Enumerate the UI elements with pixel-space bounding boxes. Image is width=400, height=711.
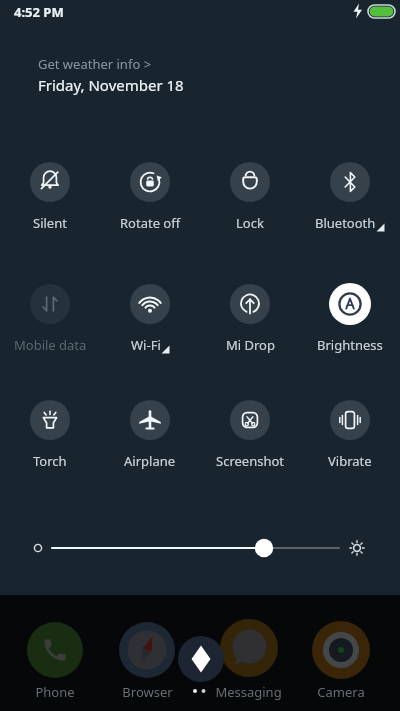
- button[interactable]: Lock: [200, 162, 300, 234]
- button[interactable]: Wi-Fi: [100, 284, 200, 356]
- staticText: Camera: [317, 683, 365, 701]
- button[interactable]: Vibrate: [300, 400, 400, 472]
- button[interactable]: Mi Drop: [200, 284, 300, 356]
- button[interactable]: Silent: [0, 162, 100, 234]
- staticText: Browser: [122, 683, 173, 701]
- button[interactable]: [220, 619, 278, 677]
- button[interactable]: [178, 636, 224, 682]
- staticText: Airplane: [124, 452, 176, 470]
- staticText: Friday, November 18: [38, 75, 184, 95]
- button[interactable]: Bluetooth: [300, 162, 400, 234]
- staticText: Lock: [236, 214, 264, 232]
- button[interactable]: Screenshot: [200, 400, 300, 472]
- button[interactable]: Torch: [0, 400, 100, 472]
- button[interactable]: Mobile data: [0, 284, 100, 356]
- staticText: Wi-Fi: [131, 336, 161, 354]
- button[interactable]: Airplane: [100, 400, 200, 472]
- staticText: 4:52 PM: [14, 3, 64, 21]
- staticText: Messaging: [215, 683, 282, 701]
- button[interactable]: [27, 622, 83, 678]
- staticText: Mobile data: [14, 336, 87, 354]
- button[interactable]: Get weather info >: [38, 55, 184, 95]
- button[interactable]: [0, 530, 400, 568]
- button[interactable]: Rotate off: [100, 162, 200, 234]
- staticText: Screenshot: [216, 452, 285, 470]
- staticText: Brightness: [317, 336, 383, 354]
- staticText: Rotate off: [120, 214, 181, 232]
- staticText: Vibrate: [328, 452, 372, 470]
- staticText: Phone: [35, 683, 75, 701]
- staticText: Torch: [33, 452, 67, 470]
- staticText: Silent: [33, 214, 67, 232]
- staticText: Mi Drop: [226, 336, 275, 354]
- staticText: Bluetooth: [315, 214, 376, 232]
- staticText: Get weather info >: [38, 55, 152, 73]
- button[interactable]: Brightness: [300, 284, 400, 356]
- button[interactable]: [119, 622, 175, 678]
- button[interactable]: [312, 621, 370, 679]
